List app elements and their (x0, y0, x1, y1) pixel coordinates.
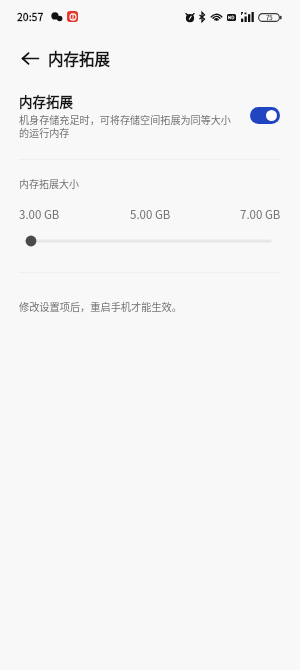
button[interactable]: Back (14, 42, 46, 74)
staticText: 7.00 GB (240, 206, 281, 223)
staticText: 20:57 (17, 9, 44, 24)
staticText: 机身存储充足时，可将存储空间拓展为同等大小的运行内存 (19, 112, 233, 140)
staticText: 修改设置项后，重启手机才能生效。 (19, 299, 182, 314)
staticText: 内存拓展 (48, 47, 111, 69)
button[interactable]: Toggle memory expansion (250, 107, 280, 124)
staticText: 内存拓展 (19, 91, 73, 111)
button[interactable]: Memory expansion size slider (19, 234, 281, 248)
staticText: 75 (266, 13, 273, 22)
staticText: 内存拓展大小 (19, 176, 79, 190)
staticText: 5.00 GB (130, 206, 171, 223)
staticText: 3.00 GB (19, 206, 60, 223)
button[interactable]: 内存拓展 (0, 88, 300, 146)
